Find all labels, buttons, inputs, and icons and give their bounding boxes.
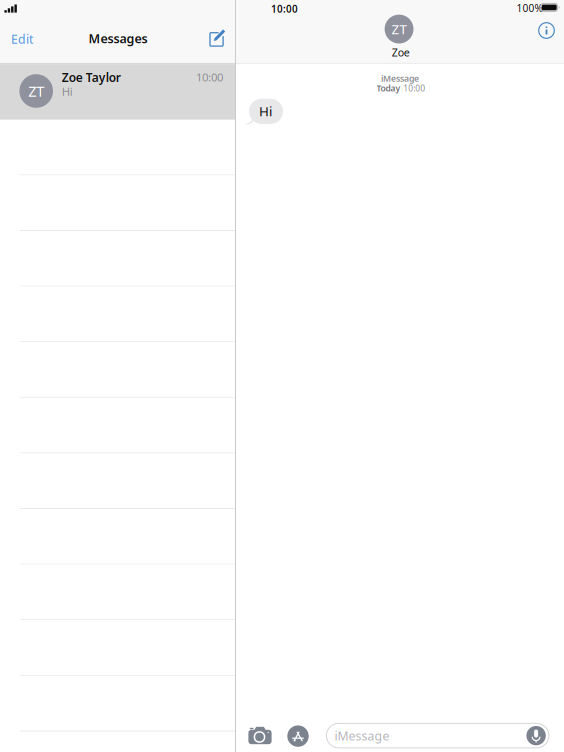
staticText: Messages (89, 30, 148, 47)
staticText: iMessage (381, 72, 419, 84)
staticText: Zoe (392, 45, 410, 59)
staticText: 10:00 (403, 82, 425, 94)
staticText: ZT (28, 81, 44, 101)
button[interactable]: Dictate (526, 726, 546, 745)
staticText: iMessage (334, 727, 389, 744)
button[interactable]: Details (529, 0, 564, 63)
staticText: 10:00 (196, 69, 223, 85)
button[interactable]: Edit (0, 0, 235, 63)
staticText: Zoe Taylor (62, 69, 121, 85)
staticText: 10:00 (271, 2, 298, 16)
button[interactable]: Compose (195, 0, 235, 63)
button[interactable]: Camera (236, 711, 564, 752)
staticText: 100% (517, 1, 543, 15)
staticText: Today (377, 82, 401, 94)
staticText: Hi (62, 84, 73, 99)
button[interactable]: Apps (236, 711, 564, 752)
staticText: ZT (392, 20, 407, 38)
staticText: Edit (11, 31, 33, 47)
button[interactable]: ZT (0, 64, 235, 120)
staticText: Hi (259, 102, 272, 120)
